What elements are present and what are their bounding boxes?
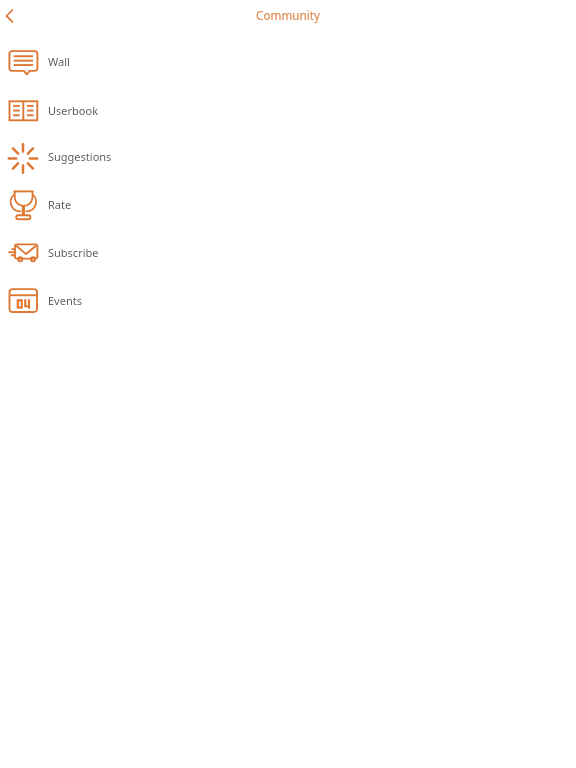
button[interactable]: Events: [0, 277, 576, 325]
button[interactable]: Userbook: [0, 87, 576, 135]
button[interactable]: Rate: [0, 181, 576, 229]
staticText: Userbook: [48, 103, 99, 118]
staticText: Events: [48, 293, 82, 308]
staticText: Community: [256, 7, 320, 23]
staticText: Suggestions: [48, 149, 112, 164]
button[interactable]: Subscribe: [0, 229, 576, 277]
button[interactable]: Wall: [0, 38, 576, 86]
staticText: Wall: [48, 54, 70, 69]
button[interactable]: Suggestions: [0, 133, 576, 181]
staticText: Subscribe: [48, 245, 99, 260]
staticText: Rate: [48, 197, 72, 212]
button[interactable]: Back: [0, 0, 30, 31]
